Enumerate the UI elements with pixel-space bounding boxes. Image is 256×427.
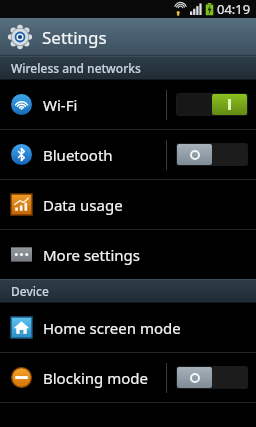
- staticText: Settings: [42, 26, 107, 49]
- button[interactable]: Home screen mode: [0, 303, 256, 352]
- staticText: More settings: [43, 245, 140, 265]
- button[interactable]: Wi-Fi switch: [176, 93, 248, 116]
- button[interactable]: Bluetooth: [0, 130, 256, 179]
- button[interactable]: Data usage: [0, 180, 256, 229]
- button[interactable]: Blocking mode switch: [176, 366, 248, 389]
- staticText: 04:19: [217, 0, 251, 18]
- button[interactable]: More settings: [0, 230, 256, 279]
- staticText: Wi-Fi: [43, 95, 78, 115]
- staticText: Bluetooth: [43, 145, 113, 165]
- staticText: Wireless and networks: [11, 60, 141, 76]
- staticText: Home screen mode: [43, 318, 181, 338]
- button[interactable]: Wi-Fi: [0, 80, 256, 129]
- staticText: Blocking mode: [43, 368, 148, 388]
- staticText: Device: [11, 283, 49, 299]
- button[interactable]: Blocking mode: [0, 353, 256, 402]
- staticText: Data usage: [43, 195, 123, 215]
- button[interactable]: Bluetooth switch: [176, 143, 248, 166]
